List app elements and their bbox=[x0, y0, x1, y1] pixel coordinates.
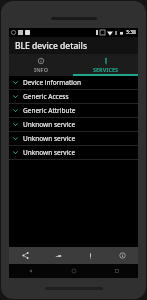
staticText: SERVICES bbox=[93, 66, 119, 73]
button[interactable]: Share bbox=[9, 247, 42, 264]
button[interactable]: Generic Access bbox=[9, 90, 138, 104]
staticText: BLE device details bbox=[15, 40, 88, 52]
button[interactable]: Generic Attribute bbox=[9, 104, 138, 118]
staticText: INFO bbox=[34, 66, 48, 73]
staticText: Unknown service bbox=[23, 134, 76, 143]
button[interactable]: Info bbox=[106, 247, 138, 264]
staticText: 3:38 bbox=[126, 29, 136, 36]
button[interactable]: Unknown service bbox=[9, 132, 138, 146]
staticText: Unknown service bbox=[23, 120, 76, 129]
button[interactable]: Device information bbox=[9, 76, 138, 90]
button[interactable]: Unknown service bbox=[9, 118, 138, 132]
button[interactable]: Home bbox=[52, 264, 95, 278]
button[interactable]: Recents bbox=[95, 264, 138, 278]
button[interactable]: INFO bbox=[9, 54, 73, 74]
button[interactable]: Back bbox=[9, 264, 52, 278]
button[interactable]: Help bbox=[74, 247, 106, 264]
staticText: Generic Access bbox=[23, 92, 69, 101]
staticText: Device information bbox=[23, 78, 81, 87]
staticText: Unknown service bbox=[23, 148, 76, 157]
button[interactable]: Upload bbox=[42, 247, 74, 264]
button[interactable]: SERVICES bbox=[73, 54, 138, 74]
button[interactable]: Unknown service bbox=[9, 146, 138, 160]
staticText: Generic Attribute bbox=[23, 106, 76, 115]
